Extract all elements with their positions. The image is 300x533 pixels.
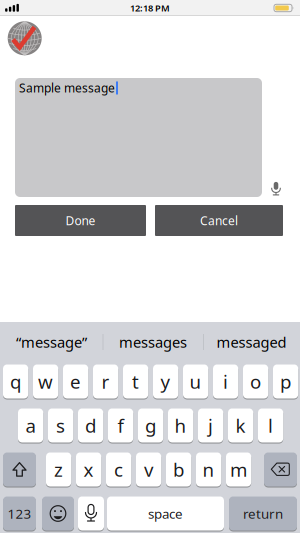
staticText: h — [175, 413, 187, 438]
button[interactable]: m — [226, 452, 251, 487]
staticText: return — [243, 505, 283, 522]
button[interactable]: e — [63, 364, 88, 399]
staticText: messages — [119, 332, 187, 352]
staticText: 12:18 PM — [130, 2, 170, 14]
staticText: l — [268, 413, 273, 438]
button[interactable]: v — [136, 452, 161, 487]
button[interactable] — [78, 496, 104, 531]
staticText: j — [208, 413, 213, 438]
button[interactable]: messaged — [204, 324, 299, 360]
staticText: w — [38, 369, 53, 394]
staticText: m — [230, 457, 247, 482]
button[interactable]: k — [228, 408, 253, 443]
button[interactable] — [264, 452, 297, 487]
staticText: u — [190, 369, 202, 394]
staticText: d — [85, 413, 96, 438]
staticText: t — [132, 369, 139, 394]
staticText: y — [161, 369, 171, 394]
button[interactable]: p — [273, 364, 298, 399]
staticText: g — [145, 413, 156, 438]
staticText: Sample message — [19, 80, 115, 96]
staticText: 123 — [7, 505, 31, 522]
staticText: a — [26, 413, 36, 438]
staticText: o — [250, 369, 261, 394]
staticText: “message” — [16, 332, 87, 352]
button[interactable]: messages — [104, 324, 202, 360]
staticText: c — [114, 457, 123, 482]
button[interactable]: r — [93, 364, 118, 399]
staticText: q — [10, 369, 21, 394]
button[interactable]: z — [46, 452, 71, 487]
button[interactable]: i — [213, 364, 238, 399]
staticText: i — [223, 369, 228, 394]
button[interactable]: return — [229, 496, 297, 531]
button[interactable]: w — [33, 364, 58, 399]
staticText: space — [148, 505, 183, 522]
button[interactable]: t — [123, 364, 148, 399]
button[interactable]: “message” — [1, 324, 102, 360]
button[interactable]: c — [106, 452, 131, 487]
staticText: n — [203, 457, 215, 482]
staticText: Done — [65, 212, 95, 228]
staticText: e — [70, 369, 81, 394]
button[interactable]: l — [258, 408, 283, 443]
button[interactable]: q — [3, 364, 28, 399]
button[interactable]: j — [198, 408, 223, 443]
button[interactable]: h — [168, 408, 193, 443]
staticText: p — [280, 369, 291, 394]
staticText: Cancel — [200, 212, 238, 228]
button[interactable]: o — [243, 364, 268, 399]
button[interactable]: b — [166, 452, 191, 487]
button[interactable] — [42, 496, 74, 531]
button[interactable] — [270, 181, 282, 196]
button[interactable]: u — [183, 364, 208, 399]
button[interactable]: y — [153, 364, 178, 399]
button[interactable]: Cancel — [155, 205, 283, 236]
button[interactable]: f — [108, 408, 133, 443]
button[interactable] — [15, 78, 262, 197]
staticText: k — [236, 413, 246, 438]
staticText: b — [173, 457, 184, 482]
staticText: f — [118, 413, 124, 438]
staticText: r — [102, 369, 110, 394]
staticText: x — [84, 457, 94, 482]
button[interactable]: space — [107, 496, 224, 531]
button[interactable]: 123 — [3, 496, 36, 531]
staticText: v — [144, 457, 153, 482]
button[interactable]: a — [18, 408, 43, 443]
button[interactable]: d — [78, 408, 103, 443]
staticText: z — [54, 457, 63, 482]
button[interactable]: n — [196, 452, 221, 487]
staticText: messaged — [216, 332, 286, 352]
button[interactable]: x — [76, 452, 101, 487]
button[interactable]: s — [48, 408, 73, 443]
button[interactable]: g — [138, 408, 163, 443]
button[interactable] — [3, 452, 36, 487]
button[interactable]: Done — [15, 205, 146, 236]
staticText: s — [56, 413, 65, 438]
